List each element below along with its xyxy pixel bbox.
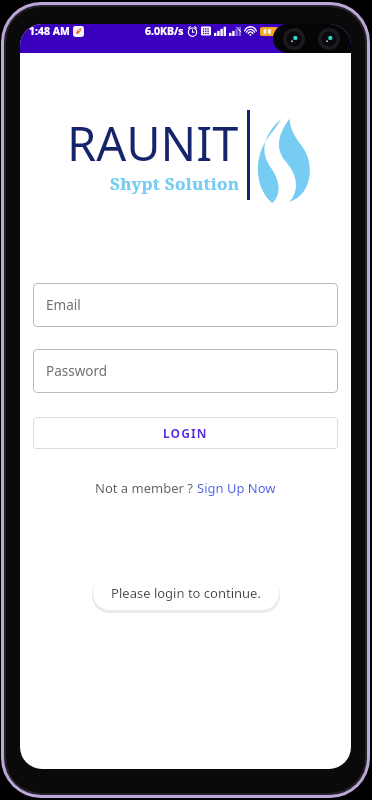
button[interactable]: Email [33, 283, 338, 327]
button[interactable]: LOGIN [33, 417, 338, 449]
button[interactable]: Sign Up Now [197, 479, 276, 497]
staticText: 1:48 AM [29, 24, 70, 38]
staticText: Email [46, 296, 81, 314]
staticText: Not a member ? [95, 479, 197, 497]
staticText: Sign Up Now [197, 479, 276, 497]
staticText: LOGIN [163, 425, 208, 441]
staticText: Shypt Solution [110, 172, 240, 195]
staticText: Please login to continue. [111, 586, 261, 604]
staticText: 6.0KB/s [145, 24, 184, 38]
staticText: Password [46, 362, 108, 380]
staticText: Please login to continue. [111, 584, 261, 602]
staticText: RAUNIT [67, 111, 239, 175]
button[interactable]: Password [33, 349, 338, 393]
